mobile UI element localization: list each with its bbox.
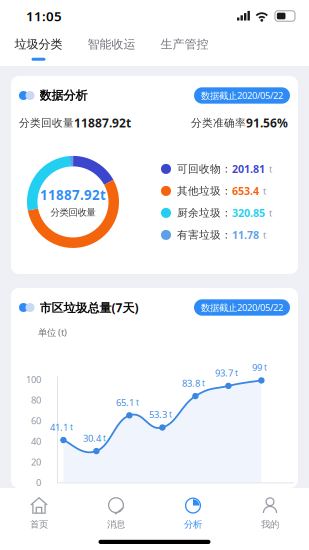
- button[interactable]: 分析: [154, 491, 231, 535]
- staticText: t: [269, 207, 272, 219]
- staticText: 数据分析: [39, 88, 87, 103]
- staticText: 91.56%: [246, 115, 288, 131]
- button[interactable]: 数据截止2020/05/22: [194, 87, 290, 104]
- staticText: 有害垃圾: [177, 228, 221, 241]
- staticText: t: [264, 362, 267, 373]
- staticText: 60: [31, 414, 41, 427]
- staticText: 201.81: [232, 162, 265, 176]
- staticText: 20: [31, 456, 41, 468]
- staticText: 市区垃圾总量(7天): [39, 299, 138, 315]
- staticText: ：: [221, 162, 232, 175]
- staticText: 单位 (t): [38, 326, 67, 338]
- staticText: 53.3: [149, 408, 167, 421]
- staticText: 可回收物: [177, 162, 221, 175]
- staticText: 653.4: [232, 184, 259, 198]
- staticText: 分析: [184, 519, 202, 530]
- staticText: 厨余垃圾: [177, 206, 221, 219]
- staticText: 4-19: [115, 487, 133, 500]
- button[interactable]: 生产管控: [148, 32, 221, 66]
- staticText: 4-21: [181, 487, 199, 500]
- staticText: 41.1: [50, 421, 68, 433]
- staticText: ：: [221, 228, 232, 241]
- staticText: t: [235, 368, 238, 378]
- staticText: 11.78: [232, 228, 259, 242]
- staticText: t: [269, 163, 272, 175]
- staticText: 93.7: [215, 367, 233, 379]
- staticText: 数据截止2020/05/22: [201, 89, 283, 102]
- staticText: 分类回收量: [19, 116, 74, 129]
- staticText: t: [70, 422, 73, 432]
- staticText: 40: [31, 435, 41, 447]
- button[interactable]: 首页: [0, 491, 77, 535]
- staticText: 99: [252, 361, 262, 374]
- staticText: 生产管控: [160, 37, 208, 52]
- staticText: t: [136, 397, 139, 408]
- staticText: 11:05: [26, 7, 62, 25]
- staticText: 其他垃圾: [177, 184, 221, 197]
- staticText: t: [169, 409, 172, 420]
- staticText: 智能收运: [87, 37, 135, 52]
- staticText: 11887.92t: [40, 186, 106, 204]
- staticText: 分类回收量: [50, 207, 95, 218]
- button[interactable]: 数据截止2020/05/22: [194, 299, 290, 316]
- button[interactable]: 我的: [231, 491, 308, 535]
- staticText: 320.85: [232, 206, 265, 220]
- staticText: t: [263, 185, 266, 197]
- staticText: t: [263, 229, 266, 241]
- staticText: ：: [221, 206, 232, 219]
- staticText: t: [103, 433, 106, 443]
- button[interactable]: 智能收运: [75, 32, 148, 66]
- staticText: 消息: [107, 519, 125, 530]
- staticText: 数据截止2020/05/22: [201, 301, 283, 314]
- staticText: 30.4: [83, 432, 101, 444]
- staticText: 83.8: [182, 377, 200, 389]
- staticText: 65.1: [116, 396, 134, 408]
- staticText: ：: [221, 184, 232, 197]
- staticText: 首页: [30, 519, 48, 530]
- button[interactable]: 垃圾分类: [2, 32, 75, 66]
- button[interactable]: 消息: [77, 491, 154, 535]
- staticText: 我的: [261, 519, 279, 530]
- staticText: 分类准确率: [191, 116, 246, 129]
- staticText: 80: [31, 394, 41, 406]
- staticText: 11887.92t: [74, 115, 131, 131]
- staticText: 100: [26, 373, 41, 386]
- staticText: 垃圾分类: [14, 37, 62, 52]
- staticText: t: [202, 378, 205, 388]
- staticText: 0: [36, 476, 41, 489]
